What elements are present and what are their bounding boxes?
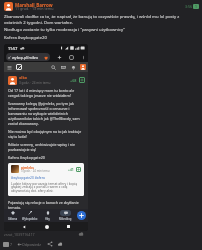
- button[interactable]: Forward: [57, 241, 63, 247]
- staticText: Nie można być obojętnym na to jak traktu…: [8, 129, 84, 139]
- staticText: Niedługo zostanie tu tylko moderacja i "…: [4, 27, 125, 33]
- button[interactable]: Menu: [7, 65, 12, 70]
- staticText: wykop.pl/mikro: [12, 55, 39, 60]
- button[interactable]: Add post: [77, 211, 86, 220]
- button[interactable]: Recents: [67, 225, 70, 228]
- staticText: 7: [10, 242, 13, 247]
- button[interactable]: Share: [47, 241, 53, 247]
- staticText: Główna: [8, 217, 18, 221]
- staticText: 11 grud. · 13 min temu: [15, 6, 54, 11]
- button[interactable]: Wykop: [16, 64, 22, 70]
- button[interactable]: wykop.pl/mikro: [8, 53, 48, 61]
- staticText: Kafera #wykopgate20: [8, 155, 45, 160]
- staticText: 3:56: [185, 4, 193, 9]
- staticText: zrzut_1039716417: [4, 232, 35, 237]
- button[interactable]: Back: [22, 225, 26, 229]
- button[interactable]: Upvote: [79, 77, 85, 83]
- button[interactable]: Home: [45, 225, 49, 229]
- staticText: Ludzie którzy poruszają temat afery i ko…: [11, 181, 81, 193]
- staticText: Od 17 lat i 4 miesięcy mam tu konto ale …: [8, 88, 84, 98]
- staticText: Marshall_Barrow: [15, 2, 53, 8]
- button[interactable]: Search: [51, 65, 56, 70]
- staticText: 3 godz. · 24 min temu: [21, 169, 50, 173]
- button[interactable]: pjmleks: [8, 163, 84, 196]
- staticText: Szanowny kolegę @pjmleks, po tym jak inf…: [8, 101, 84, 126]
- staticText: 3 godz. · 24 min temu: [19, 81, 51, 85]
- button[interactable]: Hity: [38, 209, 56, 222]
- staticText: Mikroblog: [59, 217, 72, 221]
- staticText: +68: [70, 78, 77, 83]
- staticText: Odpowiedz: [22, 242, 42, 247]
- other: Reply: [17, 242, 22, 247]
- staticText: +41: [68, 167, 74, 171]
- button[interactable]: Upvote: [76, 167, 81, 172]
- button[interactable]: More options: [81, 55, 86, 60]
- staticText: Róbcie screeny, archiwizujcie wpisy i ni…: [8, 142, 84, 152]
- button[interactable]: Notifications: [71, 65, 76, 70]
- button[interactable]: Avatar Marshall_Barrow: [4, 2, 13, 11]
- staticText: #wykopgate20 #afera: [11, 175, 45, 179]
- button[interactable]: Profile: [80, 64, 86, 70]
- staticText: 11:57: [8, 46, 18, 51]
- staticText: Zbanowali dodłke ca to, że napisał, że b…: [4, 14, 196, 25]
- button[interactable]: Wykopalisko: [21, 209, 38, 222]
- staticText: pjmleks: [21, 165, 34, 169]
- staticText: Hity: [45, 217, 50, 221]
- staticText: olkx: [19, 75, 28, 80]
- button[interactable]: New tab: [57, 55, 62, 60]
- button[interactable]: Messages: [61, 65, 66, 70]
- staticText: 1: [195, 4, 197, 9]
- button[interactable]: Główna: [4, 209, 21, 222]
- staticText: Pojawiają się relacje o banach ze zbytła…: [8, 200, 84, 209]
- staticText: Kafera #wykopgate20: [4, 35, 47, 41]
- button[interactable]: Mikroblog: [56, 209, 74, 222]
- button[interactable]: Tabs: [69, 55, 74, 60]
- staticText: Wykopalisko: [22, 217, 38, 221]
